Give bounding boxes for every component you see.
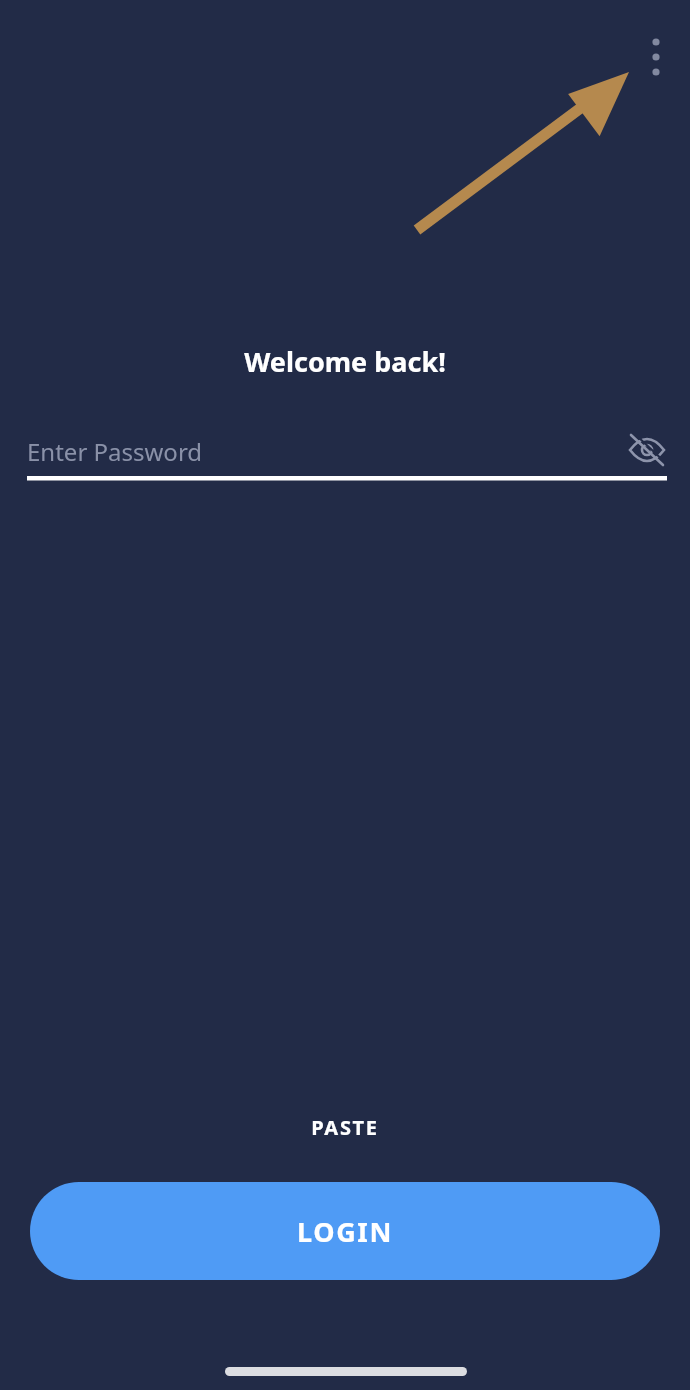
staticText: Welcome back! [0, 343, 690, 1390]
button[interactable]: LOGIN [30, 1182, 660, 1280]
button[interactable]: Enter Password [27, 420, 667, 482]
staticText: Enter Password [27, 435, 203, 468]
staticText: PASTE [311, 1114, 379, 1141]
button[interactable]: Toggle password visibility [615, 418, 679, 482]
staticText: LOGIN [297, 1213, 393, 1250]
button[interactable]: PASTE [255, 1100, 435, 1154]
button[interactable]: More options [632, 16, 680, 92]
